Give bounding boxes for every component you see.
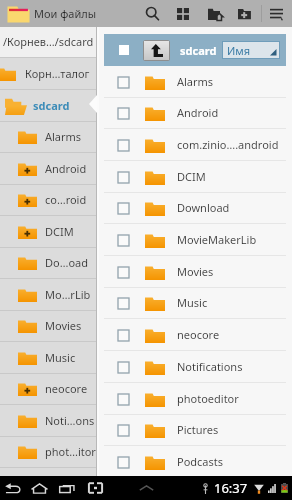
- button[interactable]: /Корнев…/sdcard: [0, 27, 96, 57]
- button[interactable]: MovieMakerLib: [104, 224, 286, 256]
- staticText: co…roid: [45, 192, 87, 207]
- button[interactable]: Alarms: [0, 121, 96, 153]
- button[interactable]: Pictures: [104, 414, 286, 446]
- button[interactable]: Alarms: [104, 66, 286, 98]
- staticText: Music: [45, 350, 76, 365]
- staticText: Alarms: [177, 74, 214, 89]
- staticText: phot…itor: [45, 444, 96, 459]
- button[interactable]: co…roid: [0, 184, 96, 216]
- staticText: Pictures: [177, 422, 219, 437]
- staticText: sdcard: [180, 43, 217, 58]
- button[interactable]: More options: [262, 0, 290, 27]
- staticText: Podcasts: [177, 454, 224, 469]
- staticText: Do…oad: [45, 255, 88, 270]
- staticText: neocore: [45, 381, 88, 396]
- button[interactable]: Noti…ons: [0, 405, 96, 437]
- button[interactable]: Корн…талог: [0, 58, 96, 90]
- button[interactable]: Home: [26, 476, 52, 500]
- staticText: sdcard: [33, 98, 70, 113]
- staticText: Имя: [227, 43, 251, 58]
- staticText: Alarms: [45, 129, 82, 144]
- staticText: Android: [45, 161, 87, 176]
- staticText: DCIM: [177, 169, 206, 184]
- staticText: DCIM: [45, 224, 74, 239]
- button[interactable]: Back: [0, 476, 26, 500]
- staticText: /Корнев…/sdcard: [3, 34, 94, 49]
- staticText: photoeditor: [177, 391, 239, 406]
- staticText: Download: [177, 200, 230, 215]
- staticText: 16:37: [214, 479, 248, 497]
- staticText: neocore: [177, 327, 220, 342]
- button[interactable]: Android: [104, 97, 286, 129]
- button[interactable]: Up one level: [144, 41, 169, 60]
- staticText: Movies: [45, 318, 82, 333]
- button[interactable]: Mo…rLib: [0, 279, 96, 311]
- button[interactable]: Search: [138, 0, 166, 27]
- button[interactable]: Music: [104, 287, 286, 319]
- button[interactable]: Sort by name: [223, 42, 279, 58]
- button[interactable]: neocore: [104, 319, 286, 351]
- staticText: MovieMakerLib: [177, 232, 257, 247]
- button[interactable]: Screenshot: [82, 476, 108, 500]
- button[interactable]: neocore: [0, 373, 96, 405]
- button[interactable]: Notifications: [104, 351, 286, 383]
- staticText: Mo…rLib: [45, 287, 91, 302]
- button[interactable]: Movies: [0, 310, 96, 342]
- button[interactable]: DCIM: [0, 216, 96, 248]
- button[interactable]: Music: [0, 342, 96, 374]
- button[interactable]: Recent apps: [54, 476, 80, 500]
- staticText: Movies: [177, 264, 214, 279]
- staticText: Music: [177, 295, 208, 310]
- button[interactable]: Do…oad: [0, 247, 96, 279]
- button[interactable]: Movies: [104, 256, 286, 288]
- staticText: Notifications: [177, 359, 243, 374]
- button[interactable]: DCIM: [104, 161, 286, 193]
- staticText: com.zinio….android: [177, 137, 279, 152]
- button[interactable]: Podcasts: [104, 446, 286, 478]
- button[interactable]: Download: [104, 192, 286, 224]
- staticText: Noti…ons: [45, 413, 95, 428]
- button[interactable]: Grid view: [169, 0, 197, 27]
- button[interactable]: com.zinio….android: [104, 129, 286, 161]
- staticText: Android: [177, 105, 219, 120]
- button[interactable]: phot…itor: [0, 436, 96, 468]
- button[interactable]: photoeditor: [104, 383, 286, 415]
- button[interactable]: sdcard: [0, 90, 96, 122]
- button[interactable]: Home folder: [201, 0, 229, 27]
- button[interactable]: Android: [0, 153, 96, 185]
- staticText: Мои файлы: [34, 6, 97, 21]
- button[interactable]: New folder: [231, 0, 259, 27]
- staticText: Корн…талог: [25, 66, 90, 81]
